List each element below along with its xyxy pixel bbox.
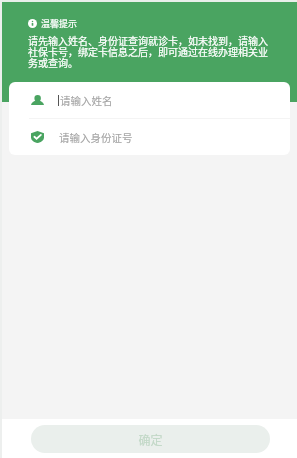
staticText: 请输入姓名 bbox=[60, 93, 113, 108]
staticText: 请输入身份证号 bbox=[59, 130, 133, 145]
button[interactable]: Name bbox=[9, 82, 290, 118]
other: Name bbox=[31, 95, 44, 105]
staticText: 温馨提示 bbox=[41, 17, 78, 30]
staticText: 确定 bbox=[138, 431, 163, 448]
button[interactable]: ID number bbox=[9, 119, 290, 155]
staticText: 请先输入姓名、身份证查询就诊卡，如未找到，请输入社保卡号，绑定卡信息之后，即可通… bbox=[28, 36, 270, 69]
other: ID number bbox=[31, 131, 44, 143]
button[interactable]: 确定 bbox=[31, 425, 270, 453]
